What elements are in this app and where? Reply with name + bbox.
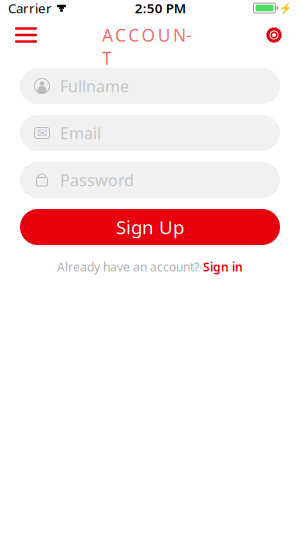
staticText: Already have an account? [57,259,199,275]
button[interactable]: Password [20,162,280,198]
staticText: Sign in [203,259,243,275]
button[interactable]: ✉ [20,115,280,151]
button[interactable]: Sign Up [20,209,280,245]
staticText: Sign Up [116,215,184,239]
staticText: Email [60,122,101,144]
staticText: Carrier [8,0,52,17]
staticText: ACCOUNT [102,23,198,46]
button[interactable]: Menu [6,20,46,50]
staticText: ✉ [37,126,47,140]
staticText: 2:50 PM [135,0,186,17]
staticText: ⚡ [279,2,292,14]
button[interactable]: Fullname [20,68,280,104]
staticText: Fullname [60,75,129,97]
button[interactable]: Settings [254,20,294,50]
staticText: Password [60,169,134,191]
button[interactable]: Already have an account? [57,259,243,275]
